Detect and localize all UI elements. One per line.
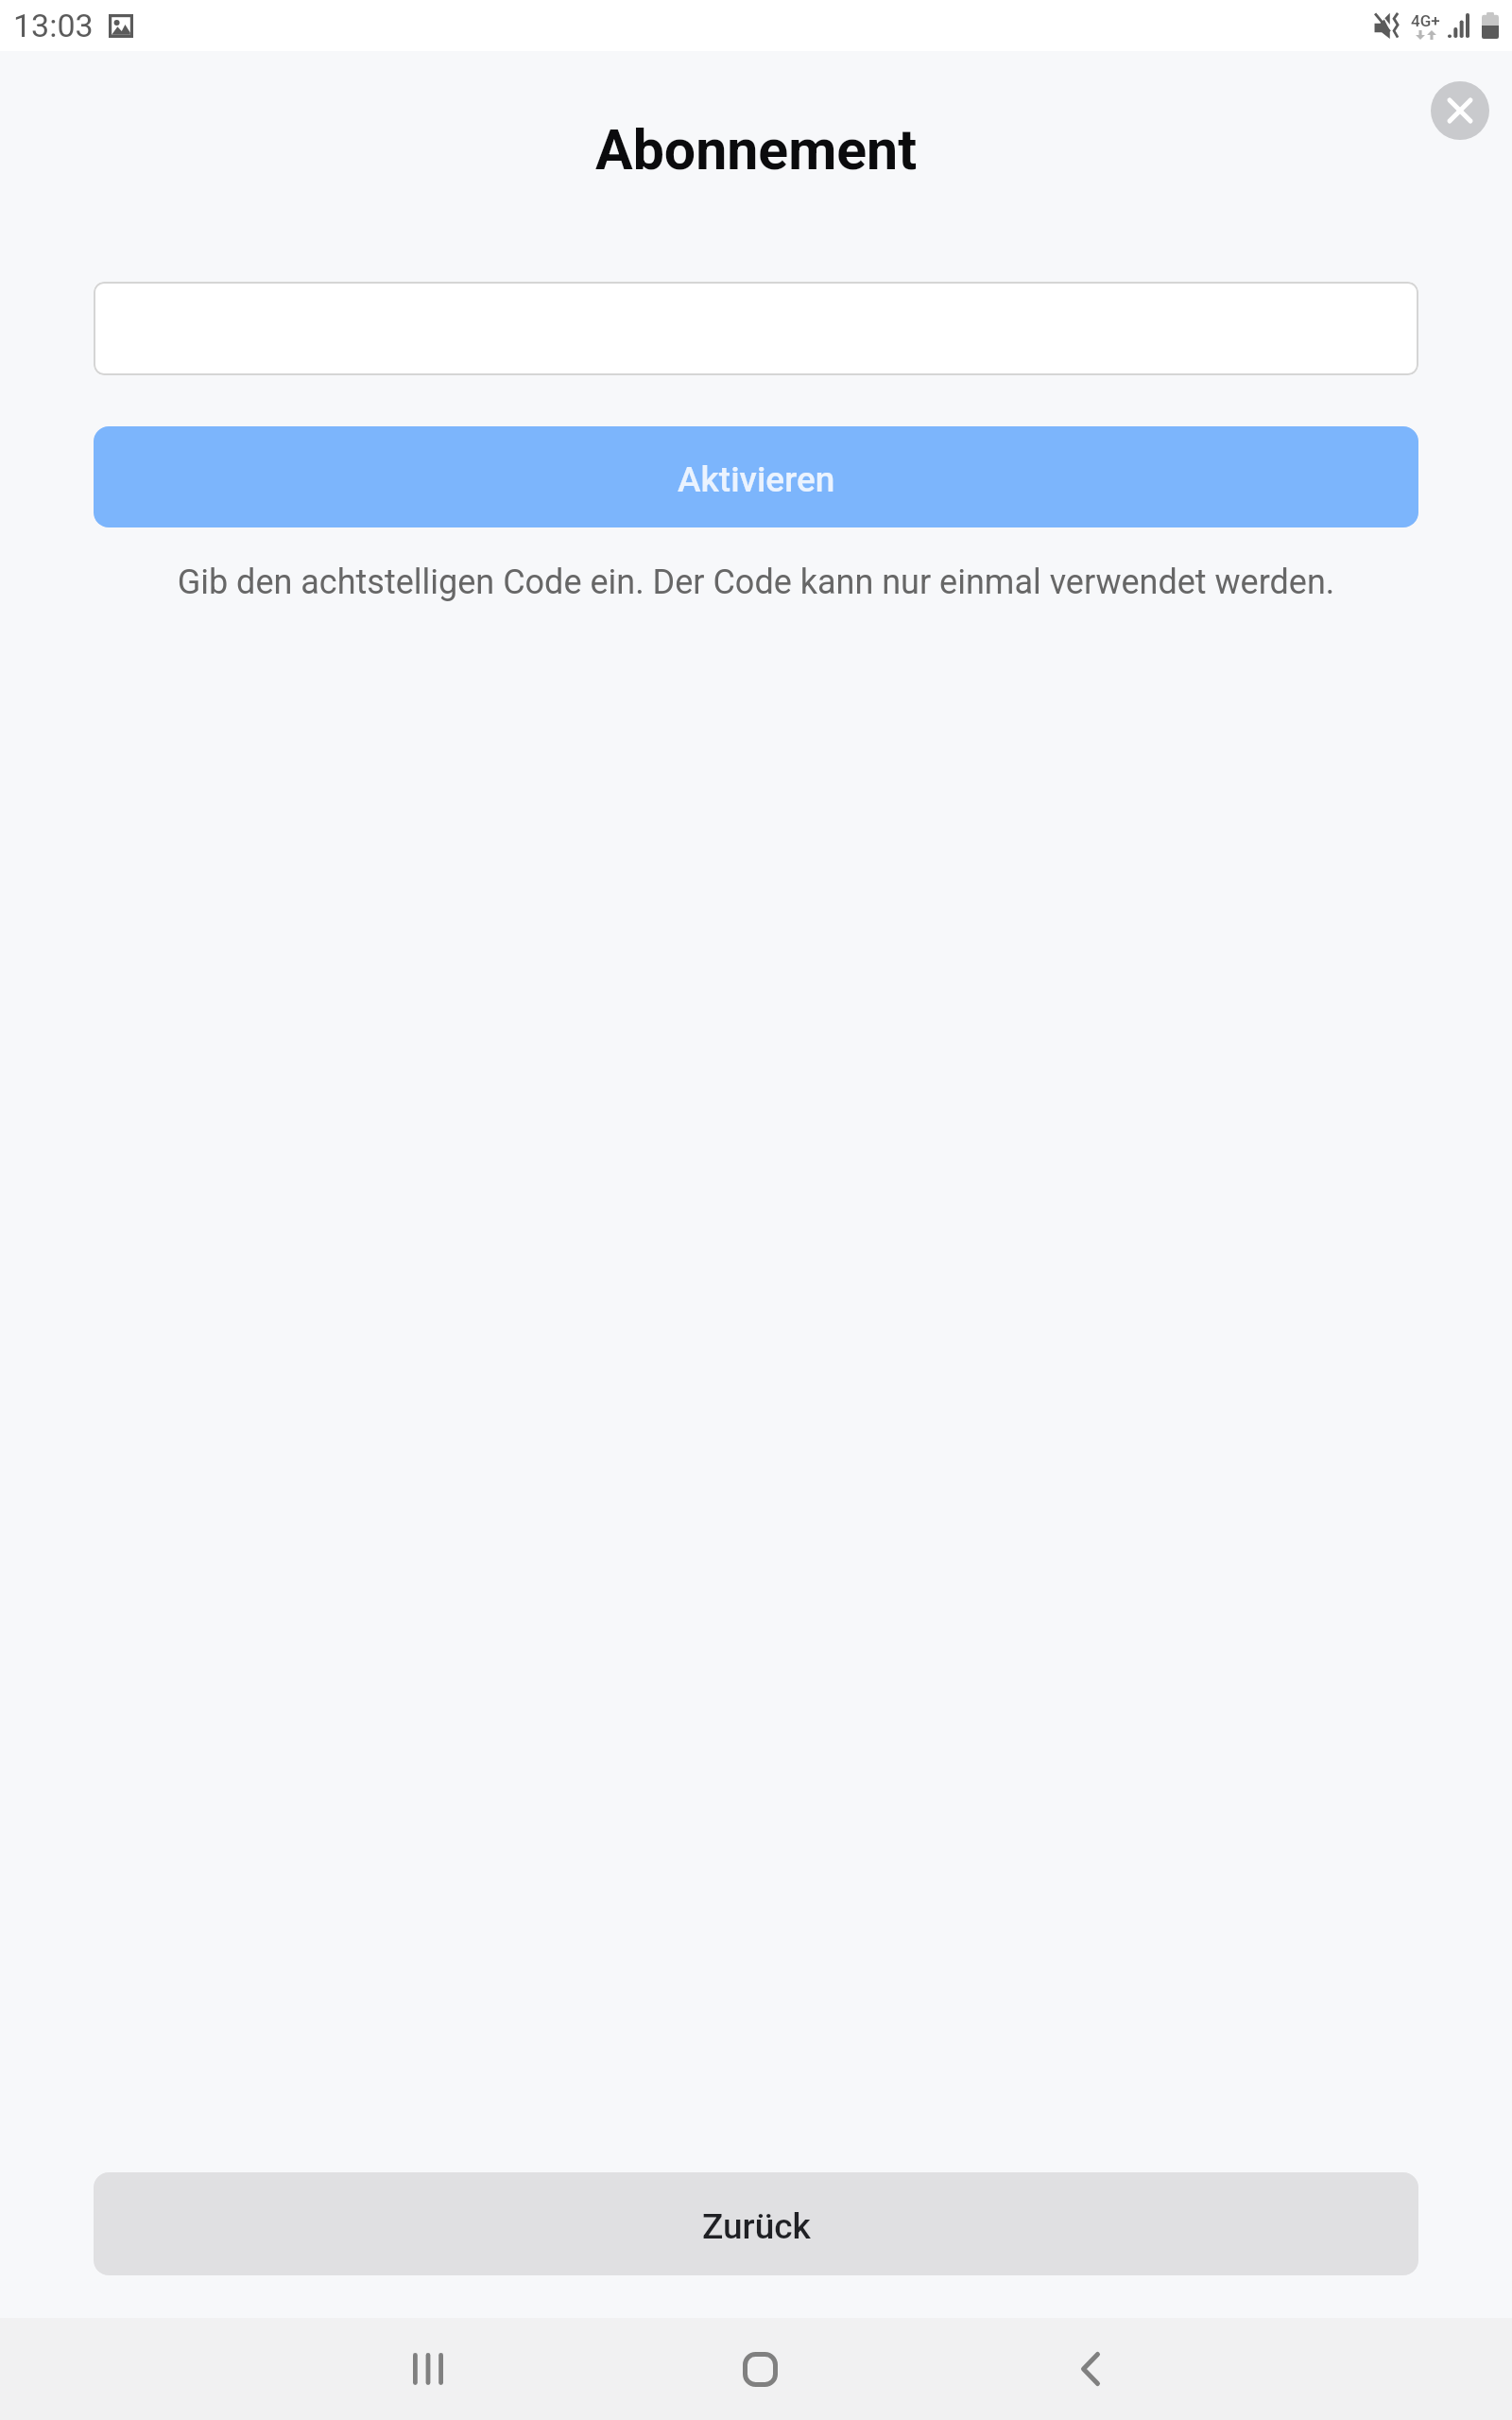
staticText: Zurück	[702, 2206, 811, 2247]
button[interactable]: Aktivieren	[94, 426, 1418, 527]
staticText: Gib den achtstelligen Code ein. Der Code…	[57, 562, 1455, 602]
staticText: 13:03	[13, 7, 94, 44]
staticText: Aktivieren	[678, 459, 835, 500]
staticText: 4G+	[1411, 11, 1440, 30]
button[interactable]: Zurück	[94, 2172, 1418, 2275]
button[interactable]: Startbildschirm	[703, 2318, 816, 2420]
button[interactable]: Letzte Apps	[371, 2318, 485, 2420]
button[interactable]	[94, 282, 1418, 375]
button[interactable]: Zurück	[1034, 2318, 1147, 2420]
button[interactable]: Schließen	[1431, 81, 1489, 140]
staticText: Abonnement	[595, 117, 918, 182]
